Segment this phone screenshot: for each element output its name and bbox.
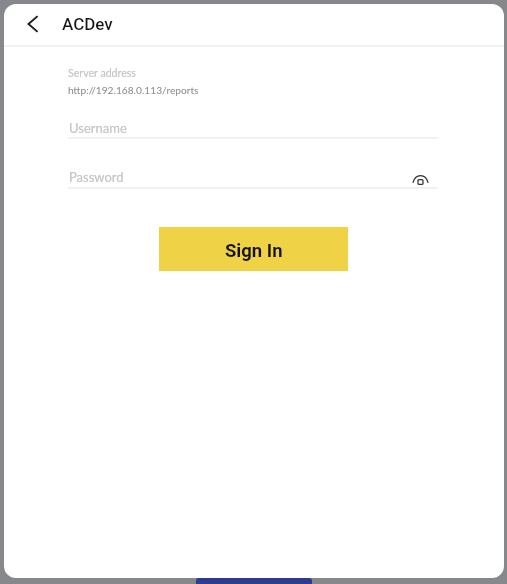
button[interactable]: Username	[68, 117, 438, 137]
staticText: Password	[69, 169, 124, 185]
staticText: Sign In	[225, 240, 283, 262]
staticText: Server address	[68, 67, 136, 80]
staticText: Username	[69, 120, 127, 136]
button[interactable]: Back	[16, 10, 44, 38]
button[interactable]: Show password	[408, 170, 434, 196]
staticText: ACDev	[62, 14, 113, 34]
button[interactable]: Password	[68, 166, 438, 186]
staticText: http://192.168.0.113/reports	[68, 84, 199, 96]
button[interactable]: Sign In	[159, 227, 348, 271]
